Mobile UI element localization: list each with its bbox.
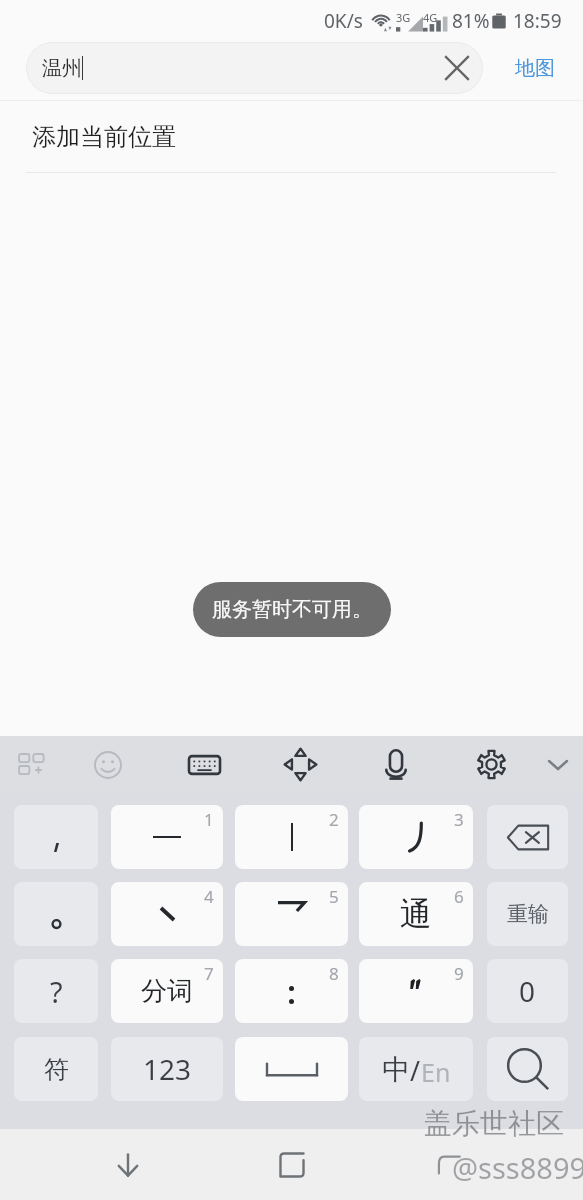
staticText: En: [421, 1055, 451, 1089]
button[interactable]: Keyboard layout: [177, 736, 231, 793]
button[interactable]: 8: [235, 959, 348, 1023]
button[interactable]: [14, 882, 98, 946]
button[interactable]: ?: [14, 959, 98, 1023]
button[interactable]: Recents: [268, 1141, 316, 1189]
button[interactable]: [235, 1037, 348, 1101]
staticText: 123: [143, 1050, 192, 1088]
button[interactable]: 温州: [26, 42, 483, 94]
button[interactable]: [487, 805, 568, 869]
staticText: @sss8899: [452, 1148, 583, 1187]
staticText: 0: [519, 972, 536, 1010]
staticText: /: [410, 1052, 421, 1089]
button[interactable]: Voice input: [369, 736, 423, 793]
button[interactable]: Apps: [6, 736, 60, 793]
staticText: 81%: [452, 8, 490, 34]
button[interactable]: Hide keyboard: [531, 736, 583, 793]
staticText: 6: [454, 885, 464, 908]
button[interactable]: 添加当前位置: [0, 101, 583, 172]
staticText: 地图: [515, 56, 555, 81]
button[interactable]: Hide keyboard: [104, 1141, 152, 1189]
button[interactable]: 1: [111, 805, 223, 869]
staticText: 0K/s: [324, 8, 363, 34]
staticText: 添加当前位置: [32, 122, 176, 152]
staticText: 2: [329, 808, 339, 831]
button[interactable]: 123: [111, 1037, 223, 1101]
staticText: 重输: [507, 901, 549, 927]
button[interactable]: Emoji: [81, 736, 135, 793]
staticText: 3: [454, 808, 464, 831]
button[interactable]: 0: [487, 959, 568, 1023]
staticText: 18:59: [513, 8, 562, 34]
button[interactable]: 中: [359, 1037, 473, 1101]
staticText: 8: [329, 962, 339, 985]
button[interactable]: Clear text: [431, 42, 483, 94]
button[interactable]: 4: [111, 882, 223, 946]
button[interactable]: 3: [359, 805, 473, 869]
staticText: 7: [204, 962, 214, 985]
staticText: 1: [204, 808, 214, 831]
staticText: ?: [50, 972, 63, 1011]
button[interactable]: 2: [235, 805, 348, 869]
staticText: 盖乐世社区: [424, 1106, 564, 1141]
staticText: 通: [400, 894, 432, 934]
button[interactable]: 符: [14, 1037, 98, 1101]
staticText: 分词: [141, 975, 193, 1008]
button[interactable]: 5: [235, 882, 348, 946]
staticText: 3G: [396, 10, 411, 25]
staticText: 9: [454, 962, 464, 985]
staticText: 5: [329, 885, 339, 908]
button[interactable]: Back: [425, 1141, 473, 1189]
button[interactable]: 9: [359, 959, 473, 1023]
button[interactable]: 地图: [509, 48, 561, 89]
button[interactable]: [14, 805, 98, 869]
staticText: 符: [44, 1054, 69, 1085]
button[interactable]: 分词: [111, 959, 223, 1023]
staticText: 中: [382, 1052, 410, 1087]
button[interactable]: 通: [359, 882, 473, 946]
staticText: 4: [204, 885, 214, 908]
staticText: 温州: [42, 56, 82, 81]
staticText: 服务暂时不可用。: [212, 597, 372, 622]
button[interactable]: Arrow keys: [273, 736, 327, 793]
button[interactable]: Settings: [464, 736, 518, 793]
button[interactable]: 重输: [487, 882, 568, 946]
button[interactable]: [487, 1037, 568, 1101]
staticText: 4G: [423, 10, 438, 25]
